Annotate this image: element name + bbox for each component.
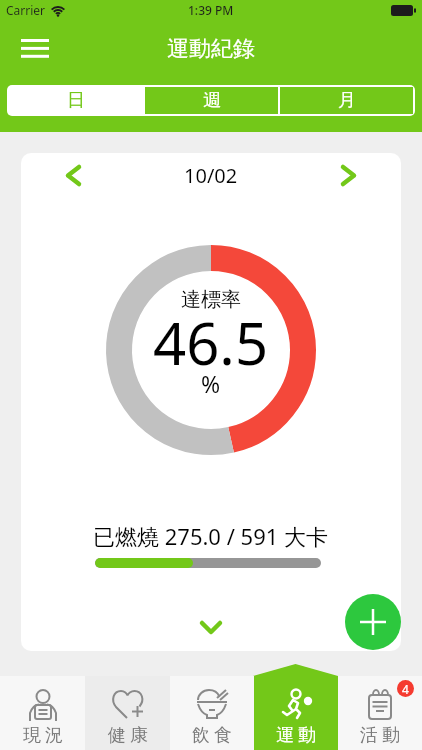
button[interactable]: 日: [9, 87, 143, 114]
button[interactable]: [343, 167, 354, 184]
staticText: 運動: [274, 724, 318, 747]
button[interactable]: [68, 167, 79, 184]
staticText: 達標率: [181, 287, 241, 312]
button[interactable]: 月: [280, 87, 413, 114]
staticText: 日: [67, 89, 85, 112]
staticText: 週: [203, 89, 221, 112]
staticText: 1:39 PM: [188, 2, 234, 18]
button[interactable]: 活動: [338, 676, 422, 750]
staticText: 運動紀錄: [167, 35, 255, 63]
button[interactable]: 健康: [85, 676, 170, 750]
staticText: %: [201, 368, 221, 399]
button[interactable]: 運動: [254, 676, 338, 750]
button[interactable]: [345, 594, 401, 650]
staticText: 健康: [106, 724, 150, 747]
staticText: 46.5: [153, 303, 269, 382]
button[interactable]: 現況: [0, 676, 85, 750]
staticText: Carrier: [6, 2, 46, 18]
staticText: 4: [402, 681, 409, 697]
staticText: 已燃燒 275.0 / 591 大卡: [93, 521, 329, 551]
button[interactable]: 飲食: [170, 676, 254, 750]
button[interactable]: [21, 39, 49, 58]
button[interactable]: 週: [145, 87, 278, 114]
staticText: 飲食: [190, 724, 234, 747]
staticText: 10/02: [184, 162, 238, 189]
staticText: 活動: [358, 724, 402, 747]
staticText: 現況: [21, 724, 65, 747]
button[interactable]: [202, 623, 220, 632]
staticText: 月: [338, 89, 356, 112]
